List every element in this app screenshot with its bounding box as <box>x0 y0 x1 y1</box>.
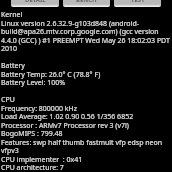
staticText: BogoMIPS : 799.48 <box>1 129 63 139</box>
staticText: DETAIL <box>25 0 46 4</box>
staticText: Linux version 2.6.32.9-g103d848 (android… <box>1 19 139 29</box>
staticText: 4.4.0 (GCC) ) #1 PREEMPT Wed May 26 18:0… <box>1 36 170 46</box>
staticText: Features: swp half thumb fastmult vfp ed… <box>1 138 163 148</box>
button[interactable]: TEST <box>114 0 161 7</box>
staticText: Battery Temp: 26.0° C (78.8° F) <box>1 70 101 80</box>
staticText: build@apa26.mtv.corp.google.com) (gcc ve… <box>1 27 159 37</box>
staticText: Load Average: 1.02 0.90 0.56 1/356 6852 <box>1 112 134 122</box>
staticText: vfpv3 <box>1 146 19 156</box>
staticText: Processor : ARMv7 Processor rev 3 (v7l) <box>1 121 129 131</box>
staticText: Battery <box>1 61 25 71</box>
staticText: Frequency: 800000 kHz <box>1 104 77 114</box>
staticText: CPU implementer : 0x41 <box>1 155 83 165</box>
staticText: CPU architecture: 7 <box>1 163 64 172</box>
staticText: Battery Level: 100% <box>1 78 66 88</box>
staticText: 2010 <box>1 44 18 54</box>
staticText: TEST <box>131 0 145 4</box>
staticText: BENCH <box>76 0 97 4</box>
button[interactable]: BENCH <box>63 0 110 7</box>
button[interactable]: DETAIL <box>11 0 59 7</box>
staticText: Kernel <box>1 10 23 20</box>
staticText: CPU <box>1 95 15 105</box>
